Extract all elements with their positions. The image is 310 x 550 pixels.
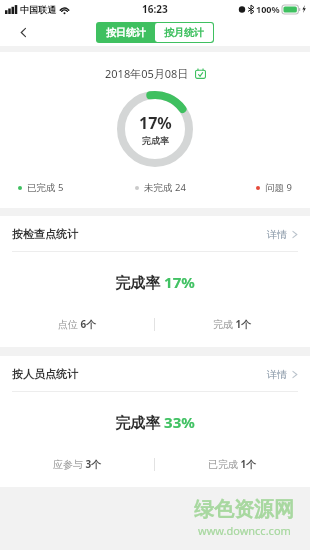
staticText: 中国联通 [20,4,56,15]
staticText: 完成率 17% [0,272,310,292]
button[interactable]: 按月统计 [155,23,213,42]
button[interactable]: 问题 9 [252,179,296,196]
staticText: 按人员点统计 [12,367,78,381]
staticText: 已完成 5 [27,181,64,194]
staticText: 问题 9 [265,181,292,194]
button[interactable]: 2018年05月08日 [99,64,212,83]
button[interactable]: 按人员点统计 [0,356,310,391]
staticText: 详情 [267,228,287,241]
button[interactable]: 按日统计 [97,23,155,42]
staticText: 未完成 24 [144,181,186,194]
staticText: www.downcc.com [198,523,291,538]
staticText: 绿色资源网 [194,497,294,522]
staticText: 100% [256,3,280,15]
staticText: 2018年05月08日 [105,66,189,81]
staticText: 完成 1个 [213,317,252,331]
staticText: 16:23 [142,2,168,16]
button[interactable]: Back [10,19,36,45]
staticText: 点位 6个 [58,317,97,331]
staticText: 按日统计 [106,26,146,39]
staticText: 按检查点统计 [12,227,78,241]
button[interactable]: 按检查点统计 [0,216,310,251]
staticText: 完成率 [142,135,169,146]
staticText: 17% [139,112,172,134]
staticText: 应参与 3个 [53,457,102,471]
button[interactable]: 已完成 5 [14,179,68,196]
staticText: 已完成 1个 [208,457,257,471]
button[interactable]: 未完成 24 [131,179,190,196]
staticText: 详情 [267,368,287,381]
staticText: 按月统计 [164,26,204,39]
staticText: 完成率 33% [0,412,310,432]
